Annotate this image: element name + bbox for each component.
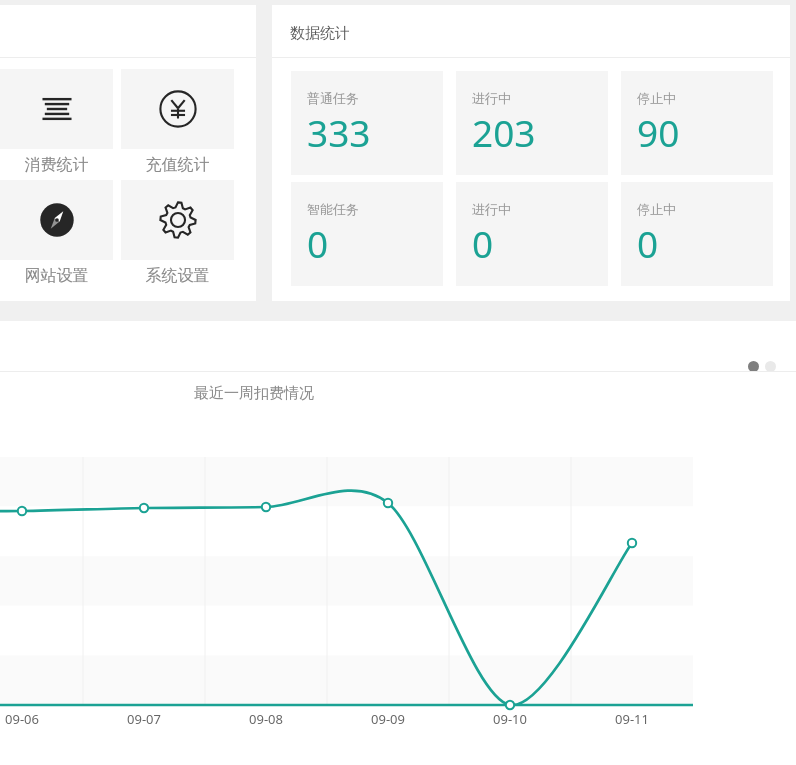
staticText: 09-07 <box>114 710 174 728</box>
staticText: 网站设置 <box>0 266 113 286</box>
staticText: 0 <box>307 218 329 268</box>
staticText: 最近一周扣费情况 <box>194 384 314 403</box>
staticText: 09-11 <box>602 710 662 728</box>
staticText: 智能任务 <box>307 201 359 217</box>
button[interactable]: 智能任务 <box>291 182 443 286</box>
button[interactable]: 消费统计 <box>0 69 113 175</box>
button[interactable]: 进行中 <box>456 71 608 175</box>
staticText: 数据统计 <box>290 24 350 43</box>
staticText: 333 <box>307 107 371 157</box>
button[interactable]: Page 2 <box>765 361 776 372</box>
staticText: 系统设置 <box>121 266 234 286</box>
staticText: 09-10 <box>480 710 540 728</box>
staticText: 停止中 <box>637 90 676 106</box>
button[interactable]: Page 1 <box>748 361 759 372</box>
staticText: 充值统计 <box>121 155 234 175</box>
button[interactable]: 停止中 <box>621 182 773 286</box>
button[interactable]: 普通任务 <box>291 71 443 175</box>
staticText: 0 <box>637 218 659 268</box>
staticText: 09-08 <box>236 710 296 728</box>
button[interactable]: 网站设置 <box>0 180 113 286</box>
staticText: 进行中 <box>472 201 511 217</box>
staticText: 203 <box>472 107 536 157</box>
staticText: 进行中 <box>472 90 511 106</box>
staticText: 09-06 <box>0 710 52 728</box>
staticText: 09-09 <box>358 710 418 728</box>
button[interactable]: 系统设置 <box>121 180 234 286</box>
button[interactable]: 进行中 <box>456 182 608 286</box>
staticText: 消费统计 <box>0 155 113 175</box>
button[interactable]: 充值统计 <box>121 69 234 175</box>
staticText: 停止中 <box>637 201 676 217</box>
staticText: 普通任务 <box>307 90 359 106</box>
staticText: 0 <box>472 218 494 268</box>
staticText: 90 <box>637 107 680 157</box>
button[interactable]: 停止中 <box>621 71 773 175</box>
